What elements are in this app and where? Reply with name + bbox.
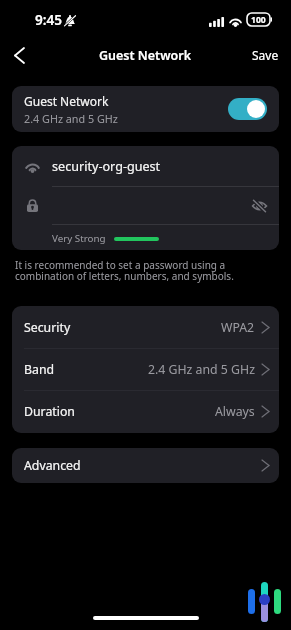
staticText: Guest Network xyxy=(24,93,109,109)
staticText: Duration xyxy=(24,403,75,420)
button[interactable]: Duration xyxy=(12,391,279,432)
button[interactable]: Guest network toggle xyxy=(228,98,267,120)
staticText: Save xyxy=(252,47,279,63)
button[interactable]: Advanced xyxy=(12,448,279,483)
staticText: Security xyxy=(24,319,71,336)
staticText: security-org-guest xyxy=(52,158,161,175)
staticText: 2.4 GHz and 5 GHz xyxy=(24,111,118,126)
staticText: It is recommended to set a password usin… xyxy=(15,258,234,283)
staticText: Guest Network xyxy=(99,47,192,64)
button[interactable]: Security xyxy=(12,306,279,348)
button[interactable]: security-org-guest xyxy=(12,146,279,186)
staticText: Always xyxy=(215,403,255,420)
button[interactable]: Band xyxy=(12,349,279,390)
staticText: Very Strong xyxy=(52,232,106,245)
staticText: WPA2 xyxy=(221,319,255,336)
staticText: Advanced xyxy=(24,457,81,474)
staticText: 100 xyxy=(251,14,266,26)
button[interactable]: Guest Network xyxy=(12,86,279,132)
staticText: 9:45 xyxy=(35,10,63,29)
button[interactable]: Back xyxy=(6,42,32,68)
staticText: Band xyxy=(24,361,55,378)
button[interactable]: Show password xyxy=(239,187,279,224)
button[interactable]: Save xyxy=(240,41,291,69)
staticText: 2.4 GHz and 5 GHz xyxy=(148,361,255,378)
